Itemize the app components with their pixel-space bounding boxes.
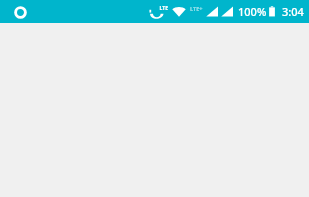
button[interactable]: Notification [12,4,28,20]
staticText: LTE+ [190,5,203,12]
staticText: 3:04 [282,4,304,19]
staticText: LTE [159,5,168,12]
staticText: 100% [238,4,267,19]
